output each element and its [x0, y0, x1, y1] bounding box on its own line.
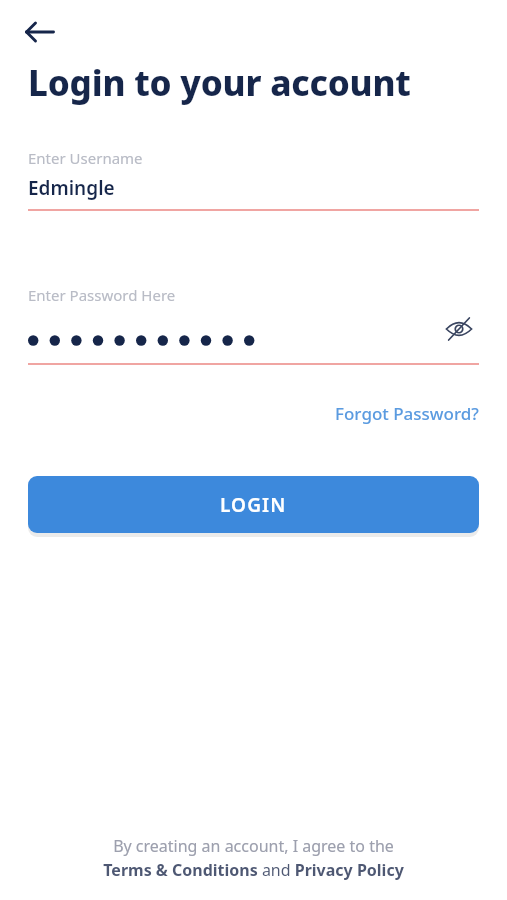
button[interactable]: LOGIN: [28, 476, 479, 533]
button[interactable]: Forgot Password?: [307, 398, 507, 429]
button[interactable]: Enter Username: [0, 148, 507, 211]
staticText: Enter Username: [28, 148, 143, 168]
staticText: Edmingle: [28, 175, 115, 201]
staticText: Login to your account: [28, 59, 411, 107]
staticText: Enter Password Here: [28, 285, 176, 305]
staticText: Forgot Password?: [335, 402, 479, 425]
button[interactable]: Show password: [439, 309, 479, 349]
staticText: By creating an account, I agree to the T…: [103, 835, 404, 881]
button[interactable]: Back: [14, 6, 66, 58]
staticText: LOGIN: [220, 492, 287, 518]
button[interactable]: By creating an account, I agree to the T…: [0, 835, 507, 900]
